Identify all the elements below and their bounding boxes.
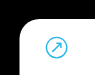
button[interactable]: Open <box>0 0 95 75</box>
